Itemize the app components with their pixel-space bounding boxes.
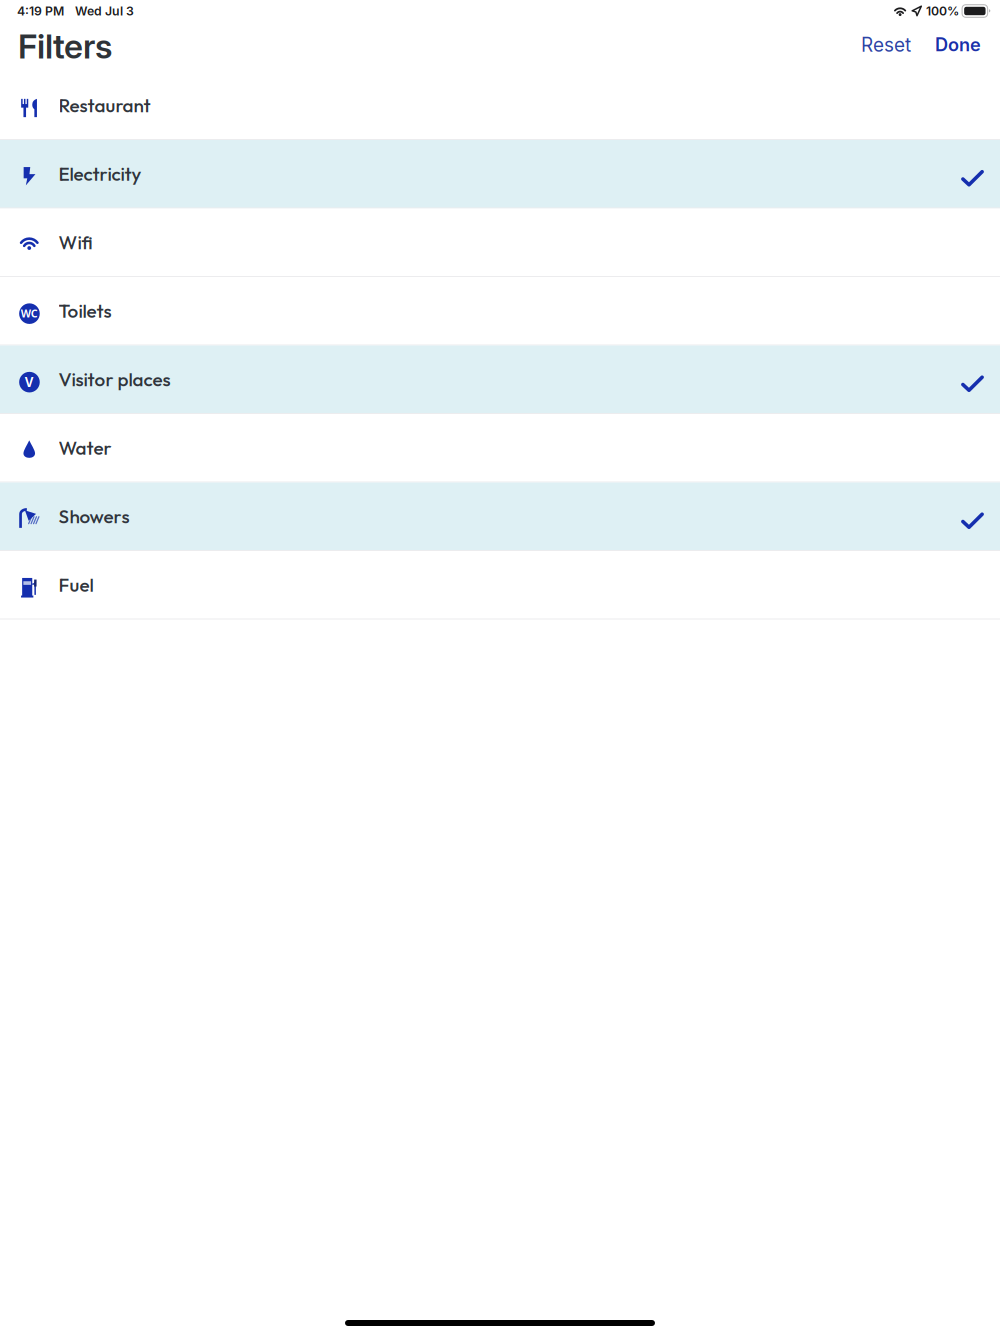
staticText: 4:19 PM: [17, 4, 64, 18]
button[interactable]: Wifi: [0, 208, 1000, 277]
staticText: Electricity: [58, 162, 141, 186]
button[interactable]: Restaurant: [0, 71, 1000, 140]
staticText: Showers: [58, 504, 129, 528]
staticText: Reset: [861, 33, 911, 56]
button[interactable]: Done: [923, 24, 993, 72]
staticText: Restaurant: [58, 93, 150, 117]
staticText: Toilets: [58, 299, 111, 323]
staticText: Filters: [18, 26, 112, 66]
staticText: V: [25, 373, 34, 391]
staticText: Water: [58, 436, 111, 460]
staticText: WC: [21, 306, 38, 320]
button[interactable]: Reset: [849, 23, 923, 72]
button[interactable]: V: [0, 345, 1000, 414]
staticText: Wifi: [58, 230, 92, 254]
button[interactable]: Fuel: [0, 551, 1000, 619]
staticText: 100%: [926, 4, 959, 18]
staticText: Done: [935, 34, 981, 56]
button[interactable]: WC: [0, 277, 1000, 345]
button[interactable]: Electricity: [0, 140, 1000, 208]
staticText: Wed Jul 3: [75, 4, 134, 18]
staticText: Fuel: [58, 573, 93, 597]
staticText: Visitor places: [58, 367, 170, 391]
button[interactable]: Water: [0, 414, 1000, 482]
button[interactable]: Showers: [0, 482, 1000, 551]
